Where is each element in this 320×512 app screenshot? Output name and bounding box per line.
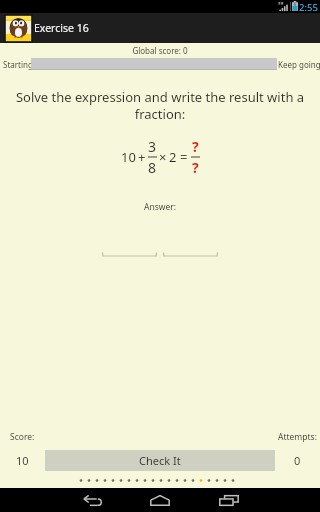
staticText: = <box>180 148 188 166</box>
staticText: Score: <box>10 431 35 443</box>
button[interactable]: Recent apps <box>195 488 263 512</box>
staticText: Starting <box>3 59 33 70</box>
button[interactable]: Home <box>126 488 194 512</box>
staticText: Check It <box>139 453 181 468</box>
staticText: 2:55 <box>299 1 318 14</box>
staticText: Keep going <box>278 59 320 70</box>
staticText: Global score: 0 <box>0 45 320 56</box>
staticText: 10 <box>16 453 29 468</box>
staticText: Solve the expression and write the resul… <box>0 88 320 123</box>
staticText: 8 <box>148 158 157 177</box>
staticText: 10 <box>121 148 136 166</box>
button[interactable]: Denominator input <box>163 246 218 257</box>
button[interactable]: Check It <box>45 450 275 471</box>
staticText: + <box>138 148 146 166</box>
staticText: 2 <box>169 148 177 166</box>
staticText: Answer: <box>0 201 320 213</box>
button[interactable]: Back <box>58 488 126 512</box>
staticText: ? <box>192 137 199 156</box>
staticText: Attempts: <box>278 431 317 443</box>
staticText: 3 <box>148 137 157 156</box>
staticText: ? <box>192 158 199 177</box>
button[interactable]: Numerator input <box>102 246 157 257</box>
staticText: 0 <box>294 453 301 468</box>
staticText: Exercise 16 <box>34 21 89 35</box>
staticText: × <box>159 148 167 166</box>
button[interactable]: Exercise 16 <box>0 13 320 43</box>
